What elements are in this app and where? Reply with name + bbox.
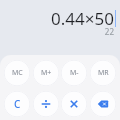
button[interactable]: Divide [33, 91, 59, 117]
staticText: MR [98, 68, 109, 78]
button[interactable]: M+ [33, 60, 59, 86]
staticText: M+ [41, 68, 52, 78]
staticText: 0.44×50 [51, 7, 114, 30]
button[interactable]: MR [90, 60, 116, 86]
button[interactable]: M- [61, 60, 87, 86]
button[interactable]: C [4, 91, 30, 117]
button[interactable]: Backspace [90, 91, 116, 117]
staticText: M- [70, 68, 79, 78]
button[interactable]: Multiply [61, 91, 87, 117]
button[interactable]: MC [4, 60, 30, 86]
staticText: C [14, 97, 21, 111]
staticText: 22 [104, 26, 114, 37]
staticText: MC [12, 68, 23, 78]
